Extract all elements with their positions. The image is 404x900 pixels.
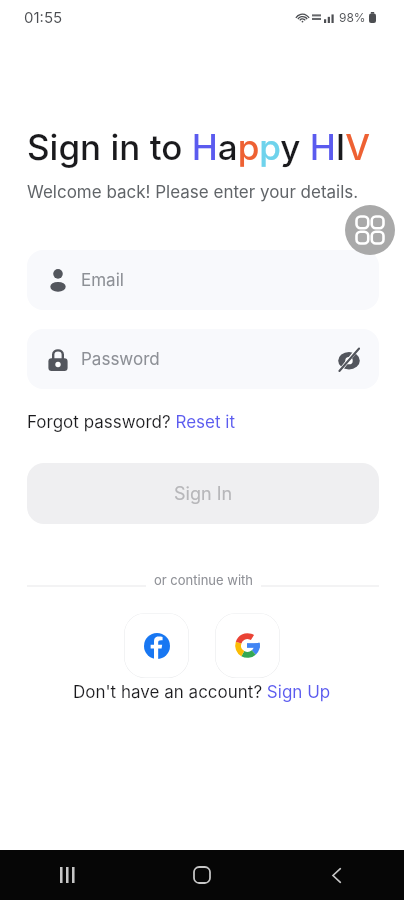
button[interactable]: Don't have an account? Sign Up	[73, 682, 331, 703]
button[interactable]: Sign In	[27, 463, 379, 524]
staticText: 98%	[339, 10, 366, 25]
button[interactable]: Back	[269, 850, 404, 900]
button[interactable]: Home	[134, 850, 269, 900]
button[interactable]: Password	[27, 329, 379, 389]
staticText: Password	[81, 349, 160, 370]
button[interactable]: Forgot password? Reset it	[27, 412, 236, 433]
button[interactable]: Apps	[345, 205, 395, 255]
staticText: 01:55	[24, 8, 63, 26]
button[interactable]: Sign in with Facebook	[124, 613, 189, 678]
staticText: Email	[81, 270, 124, 291]
button[interactable]: Email	[27, 250, 379, 310]
staticText: Forgot password? Reset it	[27, 412, 236, 433]
staticText: or continue with	[154, 572, 253, 588]
staticText: Welcome back! Please enter your details.	[27, 182, 359, 203]
staticText: Sign in to Happy HIV	[27, 126, 371, 168]
button[interactable]: Recents	[0, 850, 134, 900]
staticText: Sign In	[174, 483, 233, 505]
button[interactable]: Sign in with Google	[215, 613, 280, 678]
button[interactable]: Show password	[337, 348, 361, 371]
staticText: Don't have an account? Sign Up	[73, 682, 331, 703]
